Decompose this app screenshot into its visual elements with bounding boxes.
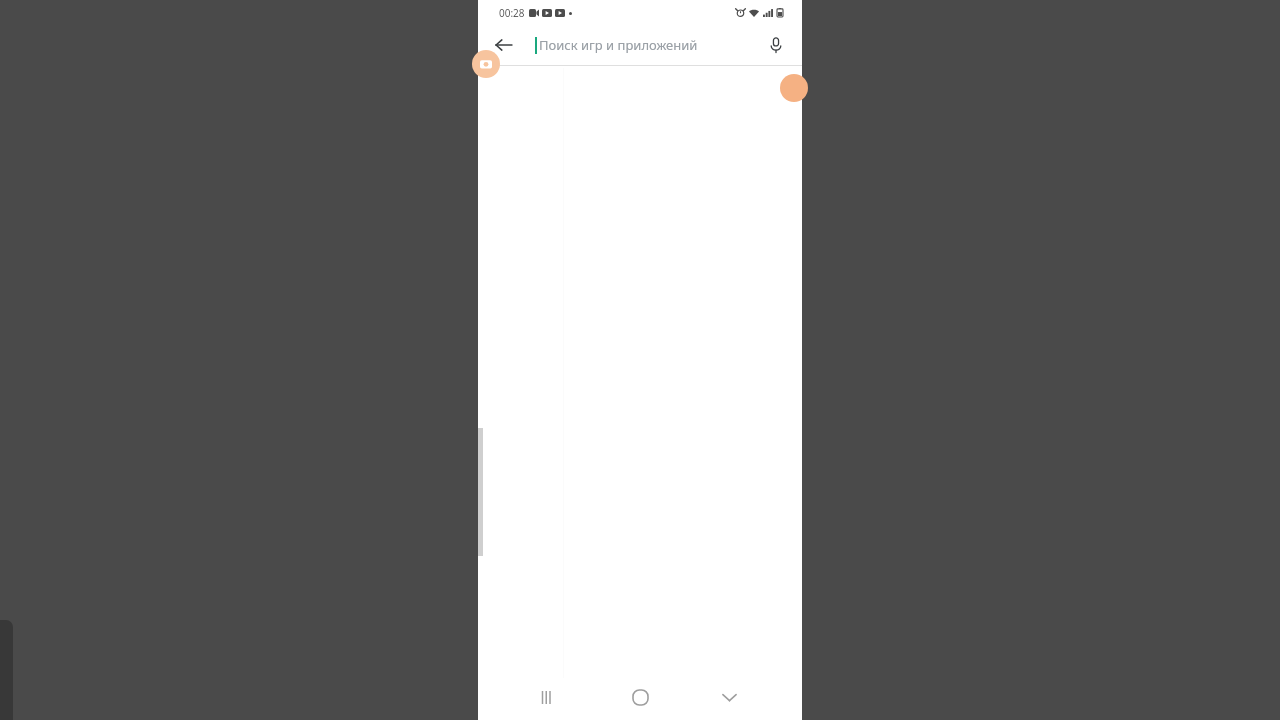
button[interactable]: Recent apps	[531, 681, 563, 713]
button[interactable]: Back	[713, 681, 745, 713]
button[interactable]: Home	[624, 681, 656, 713]
button[interactable]: Voice search	[760, 29, 792, 61]
staticText: 00:28	[499, 6, 525, 20]
button[interactable]: Поиск игр и приложений	[535, 25, 760, 65]
button[interactable]: Touch indicator	[780, 74, 808, 102]
button[interactable]: Lens search	[472, 50, 500, 78]
staticText: Поиск игр и приложений	[539, 36, 698, 54]
button[interactable]: Back	[488, 29, 520, 61]
